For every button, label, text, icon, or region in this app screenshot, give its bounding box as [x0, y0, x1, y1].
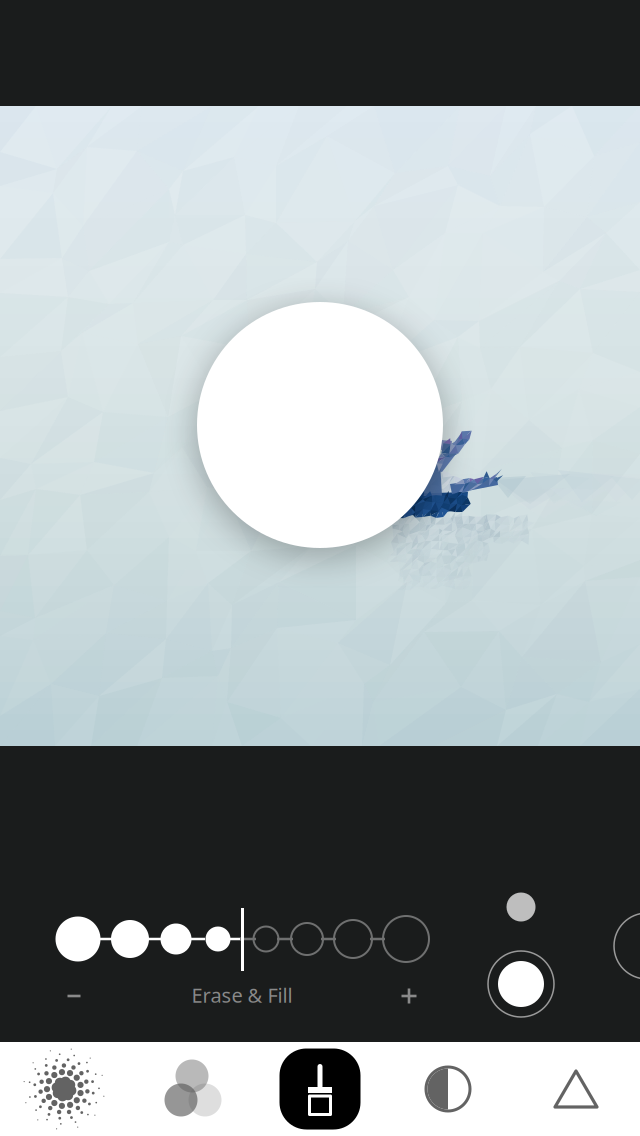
button[interactable]: White colour, selected	[484, 947, 558, 1021]
button[interactable]: Brush size 5	[240, 909, 292, 969]
button[interactable]: Brush size 6	[281, 909, 333, 969]
button[interactable]: Effects	[0, 1042, 128, 1136]
button[interactable]: Contrast	[384, 1042, 512, 1136]
button[interactable]: Shapes	[512, 1042, 640, 1136]
button[interactable]: Brush size 3	[150, 909, 202, 969]
button[interactable]: Increase brush size	[385, 972, 433, 1020]
button[interactable]: Brush	[256, 1042, 384, 1136]
button[interactable]: Brush size 8	[380, 909, 432, 969]
button[interactable]: Brush size 1	[52, 909, 104, 969]
button[interactable]: Brush size 4	[192, 909, 244, 969]
button[interactable]: Brush size 2	[104, 909, 156, 969]
button[interactable]: Grey colour	[493, 879, 549, 935]
button[interactable]: More colours	[610, 909, 640, 983]
button[interactable]: Brush size 7	[327, 909, 379, 969]
button[interactable]: Blend	[128, 1042, 256, 1136]
staticText: Erase & Fill	[191, 982, 292, 1008]
button[interactable]: Decrease brush size	[50, 972, 98, 1020]
